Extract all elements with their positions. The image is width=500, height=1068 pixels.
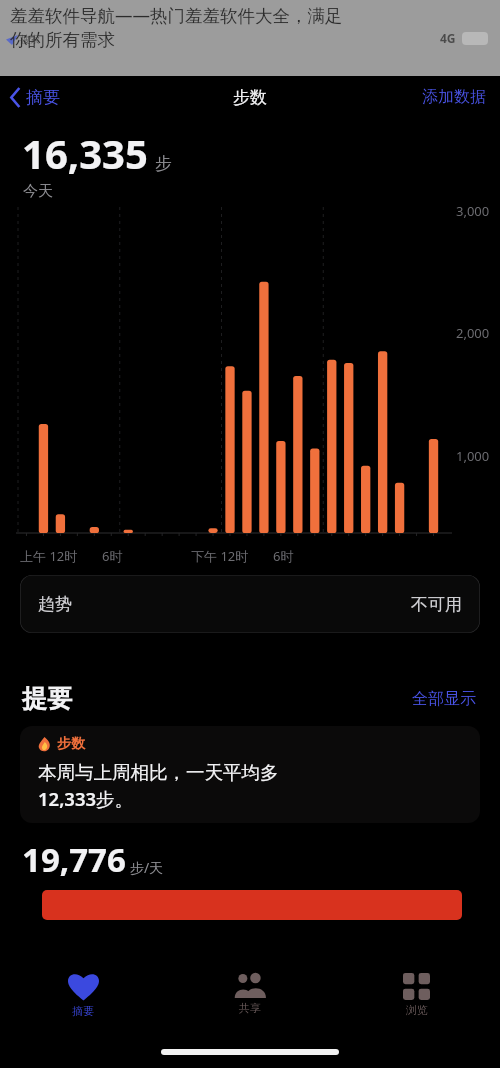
- staticText: 上午 12时: [20, 547, 78, 565]
- staticText: 6时: [273, 547, 294, 565]
- staticText: 摘要: [26, 87, 60, 108]
- staticText: 4G: [440, 30, 456, 46]
- staticText: 步: [155, 153, 172, 174]
- button[interactable]: 摘要: [0, 81, 72, 114]
- button[interactable]: 摘要: [0, 965, 166, 1018]
- staticText: 1,000: [456, 447, 490, 465]
- staticText: 不可用: [411, 594, 462, 615]
- staticText: 摘要: [72, 1004, 94, 1018]
- staticText: 搜索: [20, 33, 40, 46]
- staticText: 步数: [233, 87, 267, 108]
- staticText: 19,776: [22, 837, 126, 882]
- staticText: 趋势: [38, 594, 72, 615]
- staticText: 步数: [57, 735, 85, 753]
- staticText: 12,333步。: [38, 786, 134, 811]
- staticText: 6时: [102, 547, 123, 565]
- button[interactable]: 浏览: [333, 965, 500, 1017]
- staticText: 你的所有需求: [10, 29, 115, 51]
- button[interactable]: 添加数据: [408, 80, 500, 114]
- staticText: 下午 12时: [191, 547, 249, 565]
- staticText: 本周与上周相比，一天平均多: [38, 761, 279, 784]
- button[interactable]: 趋势: [20, 575, 480, 633]
- staticText: 羞羞软件导航——热门羞羞软件大全，满足: [10, 3, 343, 27]
- staticText: 共享: [239, 1001, 261, 1015]
- staticText: 16,335: [22, 126, 148, 180]
- button[interactable]: 全部显示: [408, 685, 480, 713]
- staticText: 添加数据: [422, 87, 486, 107]
- staticText: 2,000: [456, 324, 490, 342]
- staticText: 今天: [23, 182, 53, 201]
- staticText: 提要: [22, 683, 72, 714]
- staticText: 浏览: [406, 1003, 428, 1017]
- button[interactable]: 步数: [20, 726, 480, 823]
- staticText: 3,000: [456, 202, 490, 220]
- button[interactable]: 共享: [166, 965, 333, 1015]
- staticText: 全部显示: [412, 689, 476, 709]
- staticText: 步/天: [130, 858, 164, 877]
